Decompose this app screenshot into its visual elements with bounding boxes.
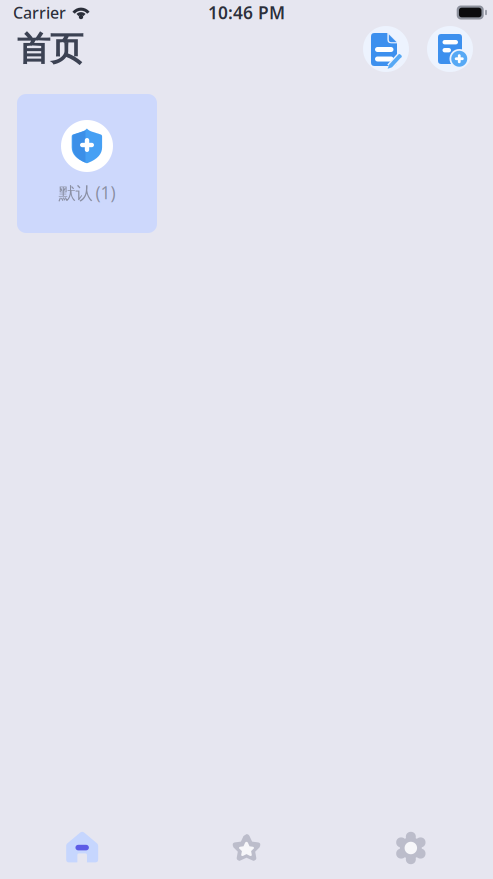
button[interactable]: Edit document: [363, 26, 409, 72]
button[interactable]: Favorites: [164, 822, 329, 874]
staticText: 10:46 PM: [208, 1, 285, 24]
button[interactable]: Settings: [329, 822, 493, 874]
staticText: 首页: [17, 28, 83, 69]
staticText: Carrier: [13, 2, 66, 23]
button[interactable]: New document: [427, 26, 473, 72]
button[interactable]: Home: [0, 822, 164, 874]
button[interactable]: 默认 (1): [17, 94, 157, 233]
staticText: 默认 (1): [58, 181, 115, 204]
